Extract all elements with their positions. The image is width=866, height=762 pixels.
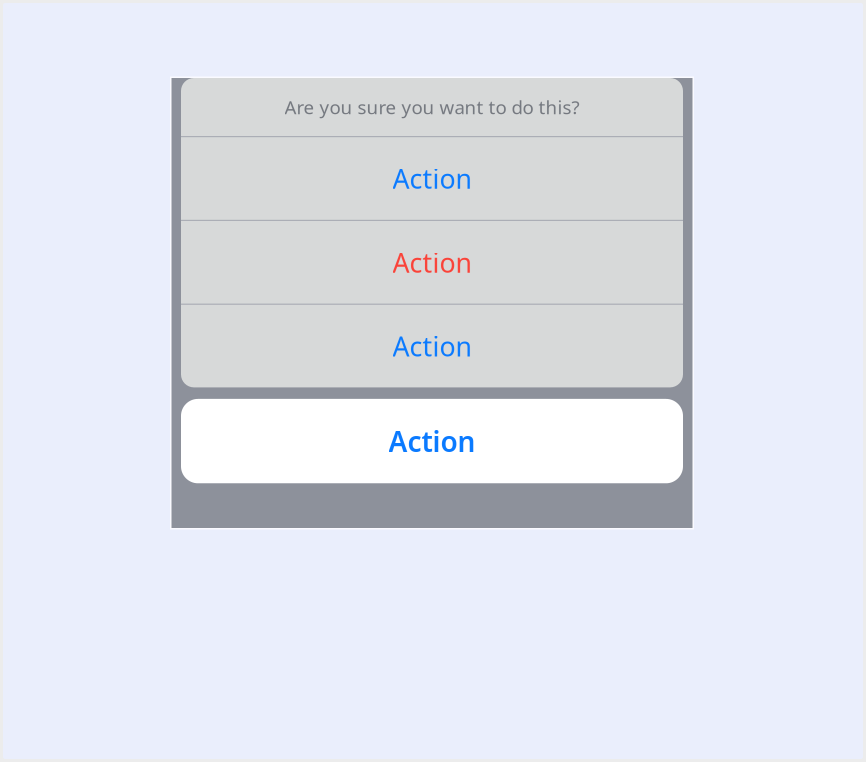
staticText: Action xyxy=(388,422,475,460)
staticText: Are you sure you want to do this? xyxy=(284,95,579,119)
button[interactable]: Action xyxy=(181,305,683,387)
button[interactable]: Action xyxy=(181,221,683,304)
staticText: Action xyxy=(392,245,471,280)
button[interactable]: Action xyxy=(181,399,683,483)
staticText: Action xyxy=(392,328,471,364)
button[interactable]: Action xyxy=(181,137,683,220)
staticText: Action xyxy=(392,161,471,196)
